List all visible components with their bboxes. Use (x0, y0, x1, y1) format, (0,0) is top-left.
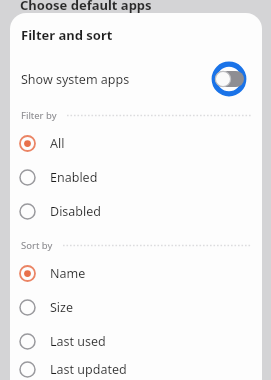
button[interactable]: All (10, 126, 262, 160)
button[interactable]: Last updated (10, 358, 262, 380)
staticText: Filter and sort (21, 26, 113, 44)
button[interactable]: Disabled (10, 194, 262, 228)
staticText: Show system apps (21, 71, 130, 88)
staticText: Name (50, 265, 86, 282)
staticText: Last used (50, 333, 106, 350)
staticText: Size (50, 299, 74, 316)
button[interactable]: Name (10, 256, 262, 290)
staticText: Enabled (50, 169, 98, 186)
button[interactable]: Show system apps (10, 61, 262, 97)
staticText: Disabled (50, 203, 102, 220)
staticText: Sort by (21, 239, 53, 252)
staticText: Choose default apps (20, 0, 152, 14)
button[interactable]: Last used (10, 324, 262, 358)
button[interactable]: Size (10, 290, 262, 324)
staticText: All (50, 135, 65, 152)
button[interactable]: Show system apps toggle (215, 71, 244, 87)
button[interactable]: Enabled (10, 160, 262, 194)
staticText: Last updated (50, 361, 127, 378)
staticText: Filter by (21, 109, 57, 122)
